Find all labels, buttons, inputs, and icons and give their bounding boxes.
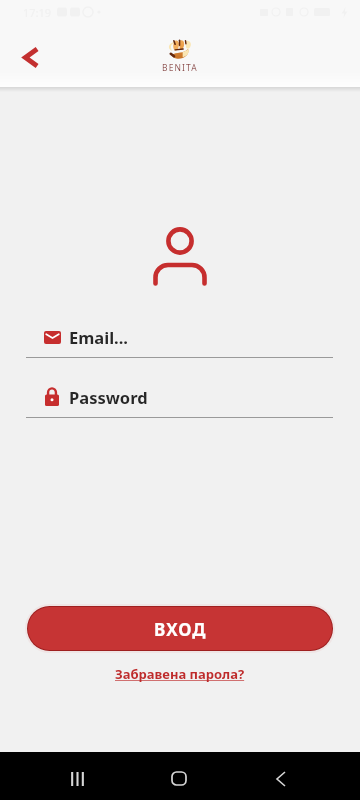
button[interactable]: Забравена парола? [109,661,251,687]
button[interactable]: Home [155,756,203,800]
staticText: Забравена парола? [115,665,245,683]
button[interactable]: Back [8,35,52,79]
button[interactable]: Recent apps [53,756,101,800]
staticText: BENITA [162,62,198,74]
button[interactable]: Back [257,756,305,800]
button[interactable]: Password [26,385,333,418]
button[interactable]: Email... [26,325,333,358]
staticText: Password [69,386,148,408]
staticText: Email... [69,326,128,348]
staticText: ВХОД [154,618,207,641]
button[interactable]: ВХОД [28,607,332,650]
